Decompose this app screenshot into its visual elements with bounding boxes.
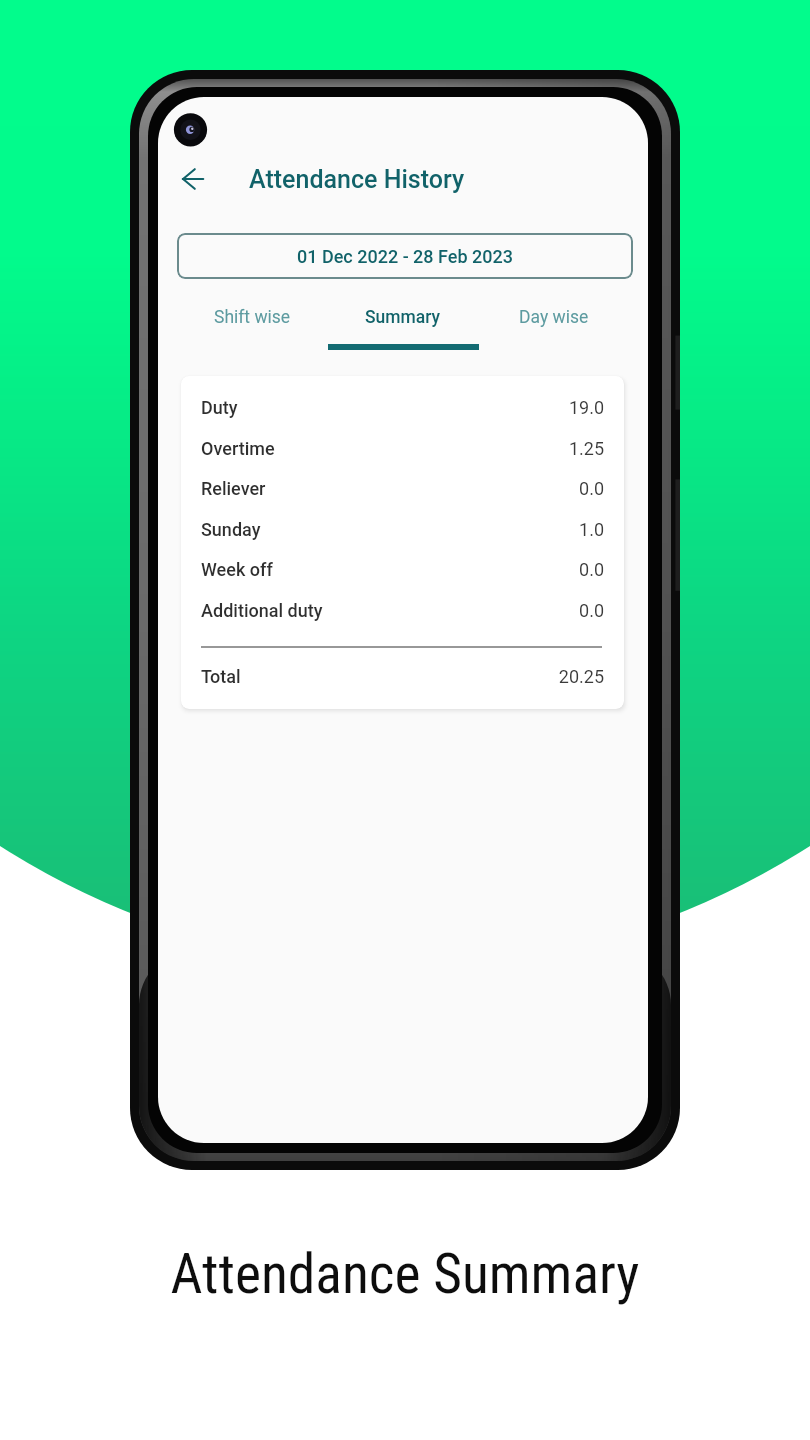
button[interactable]: Back <box>172 158 213 199</box>
staticText: Week off <box>201 559 273 580</box>
staticText: Attendance Summary <box>0 1242 810 1307</box>
staticText: 0.0 <box>181 478 604 499</box>
button[interactable]: Overtime <box>181 430 624 466</box>
staticText: Overtime <box>201 438 275 459</box>
staticText: 0.0 <box>181 600 604 621</box>
staticText: Shift wise <box>214 307 291 328</box>
staticText: 19.0 <box>181 397 604 418</box>
button[interactable]: Week off <box>181 551 624 587</box>
button[interactable]: Reliever <box>181 470 624 506</box>
button[interactable]: 01 Dec 2022 - 28 Feb 2023 <box>177 233 633 279</box>
button[interactable]: Summary <box>343 307 463 347</box>
staticText: Day wise <box>519 307 589 328</box>
staticText: 1.0 <box>181 519 604 540</box>
button[interactable]: Total <box>181 658 624 694</box>
button[interactable]: Duty <box>181 389 624 425</box>
staticText: 01 Dec 2022 - 28 Feb 2023 <box>297 246 513 267</box>
staticText: Summary <box>365 307 441 328</box>
staticText: Sunday <box>201 519 261 540</box>
button[interactable]: Additional duty <box>181 592 624 628</box>
staticText: 1.25 <box>181 438 604 459</box>
staticText: 20.25 <box>181 666 604 687</box>
button[interactable]: Shift wise <box>192 307 312 347</box>
staticText: Duty <box>201 397 238 418</box>
staticText: Total <box>201 666 241 687</box>
button[interactable]: Day wise <box>494 307 614 347</box>
staticText: Attendance History <box>249 165 465 194</box>
staticText: Reliever <box>201 478 266 499</box>
button[interactable]: Sunday <box>181 511 624 547</box>
staticText: Additional duty <box>201 600 323 621</box>
staticText: 0.0 <box>181 559 604 580</box>
